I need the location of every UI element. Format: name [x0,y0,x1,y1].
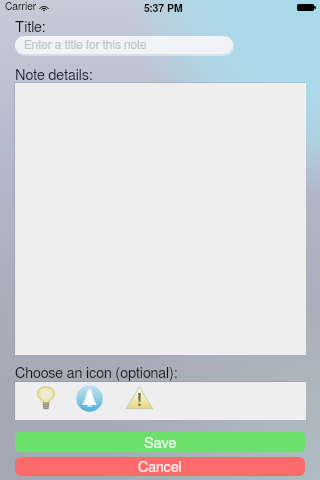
button[interactable]: Reminder bell icon [76,385,103,412]
staticText: Choose an icon (optional): [15,366,178,381]
button[interactable]: Save [15,432,305,452]
staticText: Save [144,436,177,451]
staticText: Title: [15,20,46,35]
staticText: Note details: [15,68,93,83]
staticText: Carrier [5,2,37,13]
button[interactable]: Enter a title for this note [15,36,233,54]
button[interactable]: Cancel [15,457,305,476]
staticText: Enter a title for this note [24,39,147,51]
button[interactable]: Warning icon [126,385,153,412]
staticText: 5:37 PM [144,4,183,15]
staticText: Cancel [138,460,182,475]
button[interactable]: Idea lightbulb icon [31,384,61,414]
